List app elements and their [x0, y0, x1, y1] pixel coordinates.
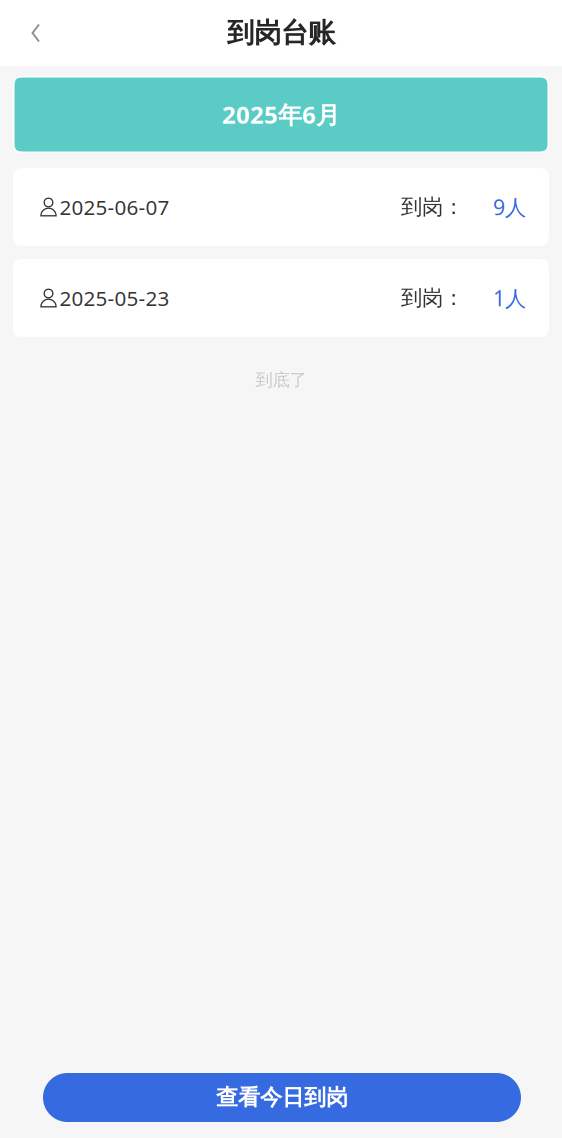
staticText: 查看今日到岗 [216, 1084, 348, 1111]
button[interactable]: 2025-06-07 [13, 168, 549, 246]
staticText: 1人 [493, 283, 526, 313]
staticText: 2025-06-07 [59, 193, 169, 221]
staticText: 到底了 [255, 369, 306, 391]
staticText: 2025-05-23 [59, 284, 169, 312]
staticText: 到岗： [401, 194, 464, 220]
button[interactable]: 查看今日到岗 [43, 1073, 521, 1122]
staticText: 到岗： [401, 285, 464, 311]
button[interactable]: Back [14, 0, 58, 66]
button[interactable]: 2025-05-23 [13, 259, 549, 337]
staticText: 2025年6月 [222, 98, 340, 131]
staticText: 9人 [493, 192, 526, 222]
staticText: 到岗台账 [227, 16, 335, 50]
